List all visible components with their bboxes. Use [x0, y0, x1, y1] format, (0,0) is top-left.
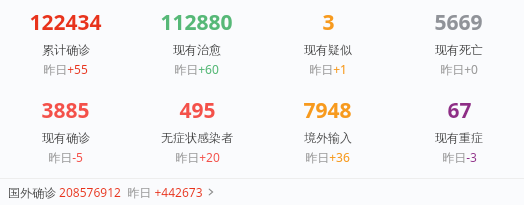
staticText: 495 — [179, 96, 216, 125]
button[interactable]: 67 — [433, 96, 485, 165]
other: 查看国外确诊详情 — [206, 187, 216, 197]
staticText: 昨日+55 — [43, 61, 88, 77]
staticText: 7948 — [303, 96, 352, 125]
staticText: 5669 — [434, 8, 483, 37]
staticText: 累计确诊 — [42, 42, 90, 57]
button[interactable]: 3885 — [39, 96, 92, 165]
staticText: 现有重症 — [435, 130, 483, 145]
button[interactable]: 7948 — [301, 96, 354, 165]
staticText: 国外确诊 208576912··昨日 +442673 — [8, 184, 203, 200]
button[interactable]: 5669 — [432, 8, 485, 77]
staticText: 现有治愈 — [173, 42, 221, 57]
button[interactable]: 122434 — [27, 8, 104, 77]
staticText: 昨日+36 — [305, 149, 350, 165]
staticText: 昨日+0 — [440, 61, 478, 77]
staticText: 无症状感染者 — [161, 130, 233, 145]
staticText: 现有死亡 — [435, 42, 483, 57]
staticText: 67 — [447, 96, 472, 125]
staticText: 昨日+20 — [175, 149, 220, 165]
staticText: 112880 — [160, 8, 233, 37]
button[interactable]: 3 — [302, 8, 354, 77]
staticText: 现有疑似 — [304, 42, 352, 57]
staticText: 3 — [322, 8, 335, 37]
staticText: 境外输入 — [304, 130, 352, 145]
button[interactable]: 112880 — [158, 8, 235, 77]
staticText: 现有确诊 — [42, 130, 90, 145]
staticText: 昨日-5 — [48, 149, 83, 165]
staticText: 3885 — [41, 96, 90, 125]
staticText: 昨日+1 — [309, 61, 347, 77]
button[interactable]: 国外确诊 208576912··昨日 +442673 — [0, 179, 524, 205]
button[interactable]: 495 — [159, 96, 235, 165]
staticText: 122434 — [29, 8, 102, 37]
staticText: 昨日+60 — [174, 61, 219, 77]
staticText: 昨日-3 — [442, 149, 477, 165]
